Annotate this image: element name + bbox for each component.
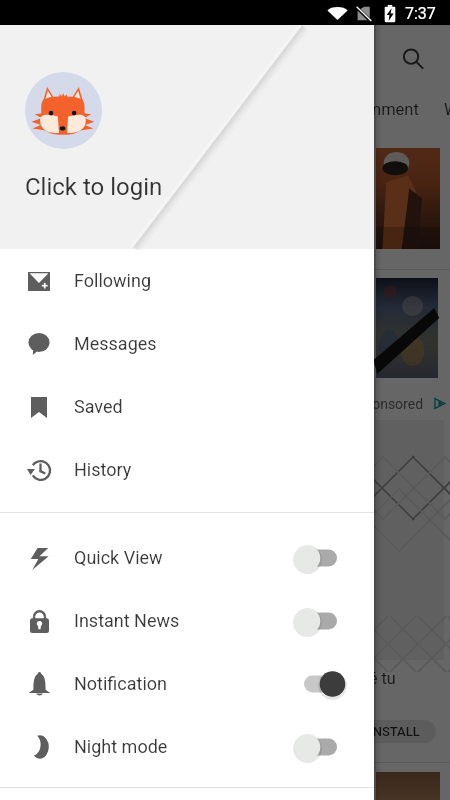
button[interactable]: Instant News <box>0 589 374 652</box>
button[interactable]: Following <box>0 249 374 312</box>
button[interactable]: Quick View <box>0 526 374 589</box>
button[interactable]: Saved <box>0 375 374 438</box>
staticText: INSTALL <box>369 724 420 739</box>
button[interactable]: History <box>0 438 374 501</box>
staticText: Click to login <box>25 173 163 201</box>
button[interactable]: Night mode <box>0 715 374 778</box>
button[interactable]: Messages <box>0 312 374 375</box>
button[interactable]: Notification <box>0 652 374 715</box>
staticText: Sponsored <box>356 396 424 412</box>
button[interactable]: INSTALL <box>352 720 436 743</box>
staticText: Saved <box>74 396 123 417</box>
staticText: Entertainment <box>315 100 419 119</box>
staticText: Instant News <box>74 610 180 631</box>
staticText: World <box>444 100 450 119</box>
button[interactable]: Search <box>401 47 425 71</box>
staticText: Night mode <box>74 736 168 757</box>
staticText: Following <box>74 270 152 291</box>
staticText: History <box>74 459 132 480</box>
staticText: Messages <box>74 333 157 354</box>
staticText: é tu <box>369 669 396 688</box>
staticText: Quick View <box>74 547 163 568</box>
staticText: 7:37 <box>405 4 436 23</box>
staticText: Notification <box>74 673 168 694</box>
